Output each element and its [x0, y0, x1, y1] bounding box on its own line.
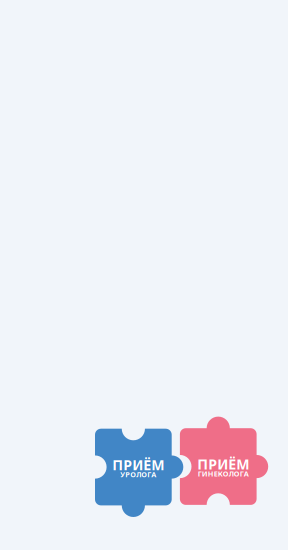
staticText: УРОЛОГА [120, 469, 156, 479]
button[interactable]: ПРИЁМ [180, 417, 268, 505]
staticText: ГИНЕКОЛОГА [198, 469, 249, 479]
staticText: ПРИЁМ [112, 455, 164, 474]
staticText: ПРИЁМ [197, 454, 249, 474]
button[interactable]: ПРИЁМ [95, 429, 183, 517]
